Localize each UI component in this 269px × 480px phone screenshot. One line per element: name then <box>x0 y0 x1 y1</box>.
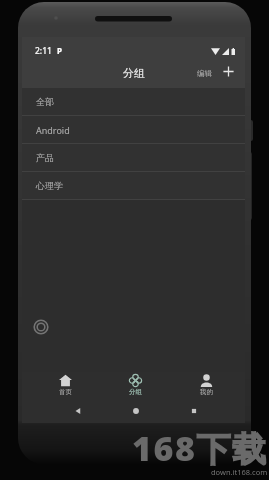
button[interactable]: Add group <box>221 64 236 79</box>
staticText: 2:11 <box>35 45 52 57</box>
staticText: 分组 <box>123 66 145 80</box>
button[interactable]: 全部 <box>22 88 245 115</box>
button[interactable]: 产品 <box>22 144 245 171</box>
staticText: 心理学 <box>36 180 63 191</box>
staticText: 168下载 <box>132 425 268 471</box>
staticText: 首页 <box>59 388 72 396</box>
button[interactable]: 心理学 <box>22 172 245 199</box>
button[interactable]: Record <box>33 319 49 335</box>
button[interactable]: 分组 <box>100 372 171 399</box>
staticText: 分组 <box>129 388 142 396</box>
staticText: 全部 <box>36 96 54 107</box>
staticText: 产品 <box>36 152 54 163</box>
button[interactable]: Back <box>71 404 85 418</box>
staticText: Android <box>36 124 70 136</box>
staticText: 我的 <box>200 388 213 396</box>
button[interactable]: Recent apps <box>187 404 201 418</box>
staticText: 编辑 <box>197 69 212 78</box>
staticText: down.it168.com <box>211 467 268 477</box>
button[interactable]: 我的 <box>171 372 242 399</box>
button[interactable]: Home <box>129 404 143 418</box>
button[interactable]: 首页 <box>30 372 100 399</box>
button[interactable]: 编辑 <box>195 64 214 83</box>
button[interactable]: Android <box>22 116 245 143</box>
staticText: P <box>57 45 62 56</box>
